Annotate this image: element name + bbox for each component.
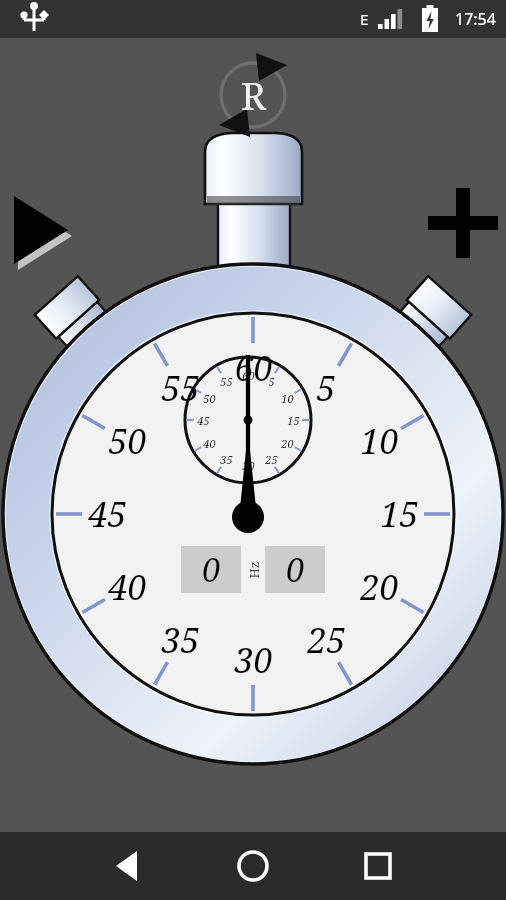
staticText: 25 — [307, 617, 346, 663]
staticText: 45 — [88, 491, 127, 537]
button[interactable]: 0 — [181, 546, 241, 593]
button[interactable]: Home — [221, 834, 285, 898]
staticText: 5 — [268, 374, 275, 389]
staticText: 35 — [220, 452, 233, 467]
staticText: 10 — [281, 391, 294, 406]
staticText: 45 — [197, 413, 210, 428]
staticText: 50 — [108, 418, 147, 464]
staticText: 5 — [316, 365, 336, 411]
staticText: Hz — [244, 561, 262, 578]
staticText: 60 — [234, 345, 273, 391]
staticText: 55 — [220, 374, 233, 389]
button[interactable]: 0 — [265, 546, 325, 593]
staticText: 10 — [360, 418, 399, 464]
staticText: R — [241, 69, 266, 121]
button[interactable]: Back — [96, 834, 160, 898]
staticText: 60 — [242, 368, 255, 383]
staticText: 40 — [108, 564, 147, 610]
button[interactable]: Recents — [346, 834, 410, 898]
staticText: 35 — [161, 617, 200, 663]
staticText: 40 — [203, 436, 216, 451]
button[interactable]: Rotate — [210, 52, 296, 138]
button[interactable]: Start — [4, 188, 74, 258]
staticText: 30 — [234, 637, 273, 683]
staticText: 0 — [286, 547, 305, 592]
staticText: 20 — [360, 564, 399, 610]
staticText: 25 — [265, 452, 278, 467]
button[interactable]: Add lap — [428, 188, 498, 258]
staticText: 30 — [242, 458, 255, 473]
staticText: E — [360, 9, 369, 29]
staticText: 17:54 — [455, 8, 496, 30]
staticText: 0 — [202, 547, 221, 592]
staticText: 15 — [380, 491, 419, 537]
staticText: 55 — [161, 365, 200, 411]
staticText: 50 — [203, 391, 216, 406]
staticText: 15 — [287, 413, 300, 428]
staticText: 20 — [281, 436, 294, 451]
